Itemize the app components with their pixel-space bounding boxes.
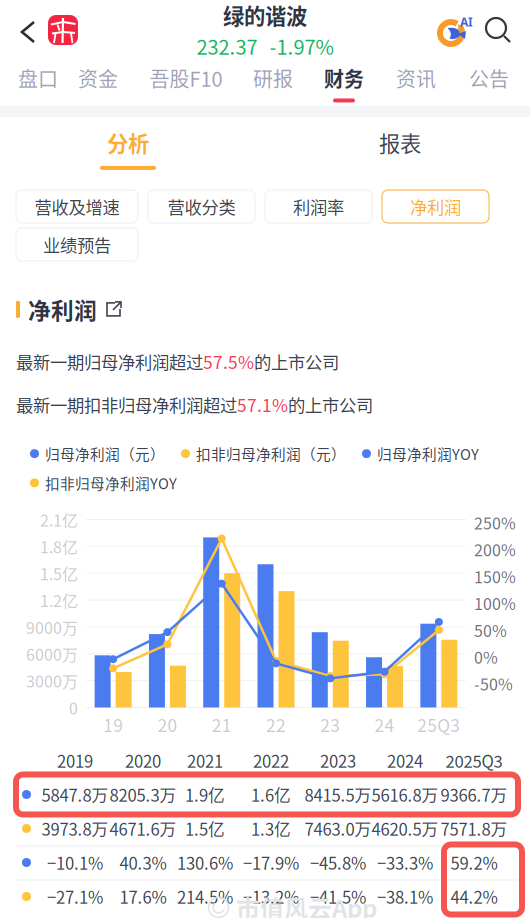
button[interactable]: 盘口 bbox=[0, 60, 56, 106]
staticText: 4620.5万 bbox=[371, 816, 438, 840]
staticText: 59.2% bbox=[450, 850, 497, 874]
staticText: 100% bbox=[474, 591, 516, 615]
staticText: 研报 bbox=[253, 63, 293, 92]
staticText: 2020 bbox=[125, 748, 161, 772]
staticText: 7571.8万 bbox=[440, 816, 507, 840]
staticText: 44.2% bbox=[450, 884, 497, 908]
staticText: 6000万 bbox=[26, 642, 78, 665]
button[interactable]: 财务 bbox=[0, 60, 56, 106]
staticText: 市值风云App bbox=[236, 890, 377, 918]
staticText: 报表 bbox=[379, 127, 421, 158]
staticText: 4671.6万 bbox=[109, 816, 176, 840]
staticText: 扣非归母净利润（元） bbox=[196, 443, 346, 464]
staticText: 1.5亿 bbox=[40, 562, 78, 585]
staticText: 营收及增速 bbox=[34, 194, 119, 219]
staticText: 归母净利润YOY bbox=[377, 443, 479, 464]
staticText: 25Q3 bbox=[417, 712, 460, 737]
staticText: 130.6% bbox=[177, 850, 233, 874]
staticText: 2025Q3 bbox=[445, 748, 502, 772]
button[interactable]: 报表 bbox=[0, 117, 140, 180]
button[interactable]: 资讯 bbox=[0, 60, 56, 106]
staticText: 2019 bbox=[57, 748, 93, 772]
staticText: 7463.0万 bbox=[304, 816, 371, 840]
staticText: 20 bbox=[157, 712, 177, 737]
button[interactable]: Search bbox=[484, 0, 530, 60]
button[interactable]: 业绩预告 bbox=[16, 228, 138, 261]
button[interactable]: 营收及增速 bbox=[16, 190, 138, 223]
button[interactable]: Back bbox=[0, 0, 48, 60]
button[interactable]: 研报 bbox=[0, 60, 56, 106]
staticText: 9366.7万 bbox=[440, 782, 507, 806]
staticText: 8205.3万 bbox=[109, 782, 176, 806]
staticText: −45.8% bbox=[310, 850, 366, 874]
staticText: −33.3% bbox=[377, 850, 433, 874]
staticText: 8415.5万 bbox=[304, 782, 371, 806]
staticText: 9000万 bbox=[26, 615, 78, 638]
staticText: 营收分类 bbox=[167, 194, 235, 219]
staticText: 5616.8万 bbox=[371, 782, 438, 806]
staticText: 1.6亿 bbox=[251, 782, 291, 806]
staticText: −13.2% bbox=[243, 884, 299, 908]
staticText: 净利润 bbox=[28, 293, 97, 326]
button[interactable]: 分析 bbox=[0, 117, 140, 180]
button[interactable]: 资金 bbox=[0, 60, 56, 106]
button[interactable]: 营收分类 bbox=[148, 190, 255, 223]
staticText: 2021 bbox=[187, 748, 223, 772]
staticText: 21 bbox=[212, 712, 232, 737]
staticText: 2023 bbox=[320, 748, 356, 772]
staticText: 最新一期扣非归母净利润超过 bbox=[16, 392, 237, 417]
staticText: 净利润 bbox=[410, 194, 461, 219]
staticText: 1.8亿 bbox=[40, 535, 78, 558]
staticText: 24 bbox=[375, 712, 395, 737]
staticText: 1.5亿 bbox=[185, 816, 225, 840]
staticText: −38.1% bbox=[377, 884, 433, 908]
button[interactable]: Stock logo bbox=[48, 0, 78, 60]
staticText: 3000万 bbox=[26, 669, 78, 692]
staticText: 200% bbox=[474, 538, 516, 561]
button[interactable]: 净利润 bbox=[382, 190, 489, 223]
staticText: 财务 bbox=[324, 63, 364, 92]
staticText: 214.5% bbox=[177, 884, 233, 908]
staticText: -50% bbox=[474, 672, 513, 695]
staticText: 17.6% bbox=[119, 884, 166, 908]
staticText: −41.5% bbox=[310, 884, 366, 908]
staticText: 2024 bbox=[387, 748, 423, 772]
staticText: 22 bbox=[266, 712, 286, 737]
staticText: 250% bbox=[474, 511, 516, 534]
staticText: 业绩预告 bbox=[43, 232, 111, 257]
button[interactable]: AI assistant bbox=[436, 0, 484, 60]
staticText: −17.9% bbox=[243, 850, 299, 874]
staticText: 1.3亿 bbox=[251, 816, 291, 840]
button[interactable]: 利润率 bbox=[265, 190, 372, 223]
staticText: 19 bbox=[103, 712, 123, 737]
staticText: 40.3% bbox=[119, 850, 166, 874]
staticText: 0 bbox=[69, 696, 78, 719]
staticText: 资讯 bbox=[396, 63, 436, 92]
staticText: 的上市公司 bbox=[288, 392, 373, 417]
button[interactable]: Open detail bbox=[105, 301, 122, 318]
staticText: 150% bbox=[474, 565, 516, 588]
staticText: 资金 bbox=[78, 63, 118, 92]
staticText: 扣非归母净利润YOY bbox=[45, 472, 177, 493]
staticText: 归母净利润（元） bbox=[45, 443, 165, 464]
staticText: 57.1% bbox=[237, 392, 288, 417]
staticText: 23 bbox=[320, 712, 340, 737]
staticText: 的上市公司 bbox=[254, 349, 339, 374]
staticText: 50% bbox=[474, 618, 507, 641]
staticText: 2.1亿 bbox=[40, 508, 78, 531]
staticText: -1.97% bbox=[269, 31, 333, 60]
staticText: −10.1% bbox=[47, 850, 103, 874]
staticText: −27.1% bbox=[47, 884, 103, 908]
staticText: 公告 bbox=[469, 63, 509, 92]
staticText: 吾股F10 bbox=[149, 63, 222, 92]
staticText: 57.5% bbox=[203, 349, 254, 374]
staticText: 绿的谐波 bbox=[223, 0, 307, 30]
staticText: 分析 bbox=[107, 127, 149, 158]
staticText: 最新一期归母净利润超过 bbox=[16, 349, 203, 374]
button[interactable]: 公告 bbox=[0, 60, 56, 106]
button[interactable]: 吾股F10 bbox=[0, 60, 86, 106]
staticText: 232.37 bbox=[196, 31, 257, 60]
staticText: 利润率 bbox=[293, 194, 344, 219]
staticText: 5847.8万 bbox=[41, 782, 108, 806]
staticText: 3973.8万 bbox=[41, 816, 108, 840]
